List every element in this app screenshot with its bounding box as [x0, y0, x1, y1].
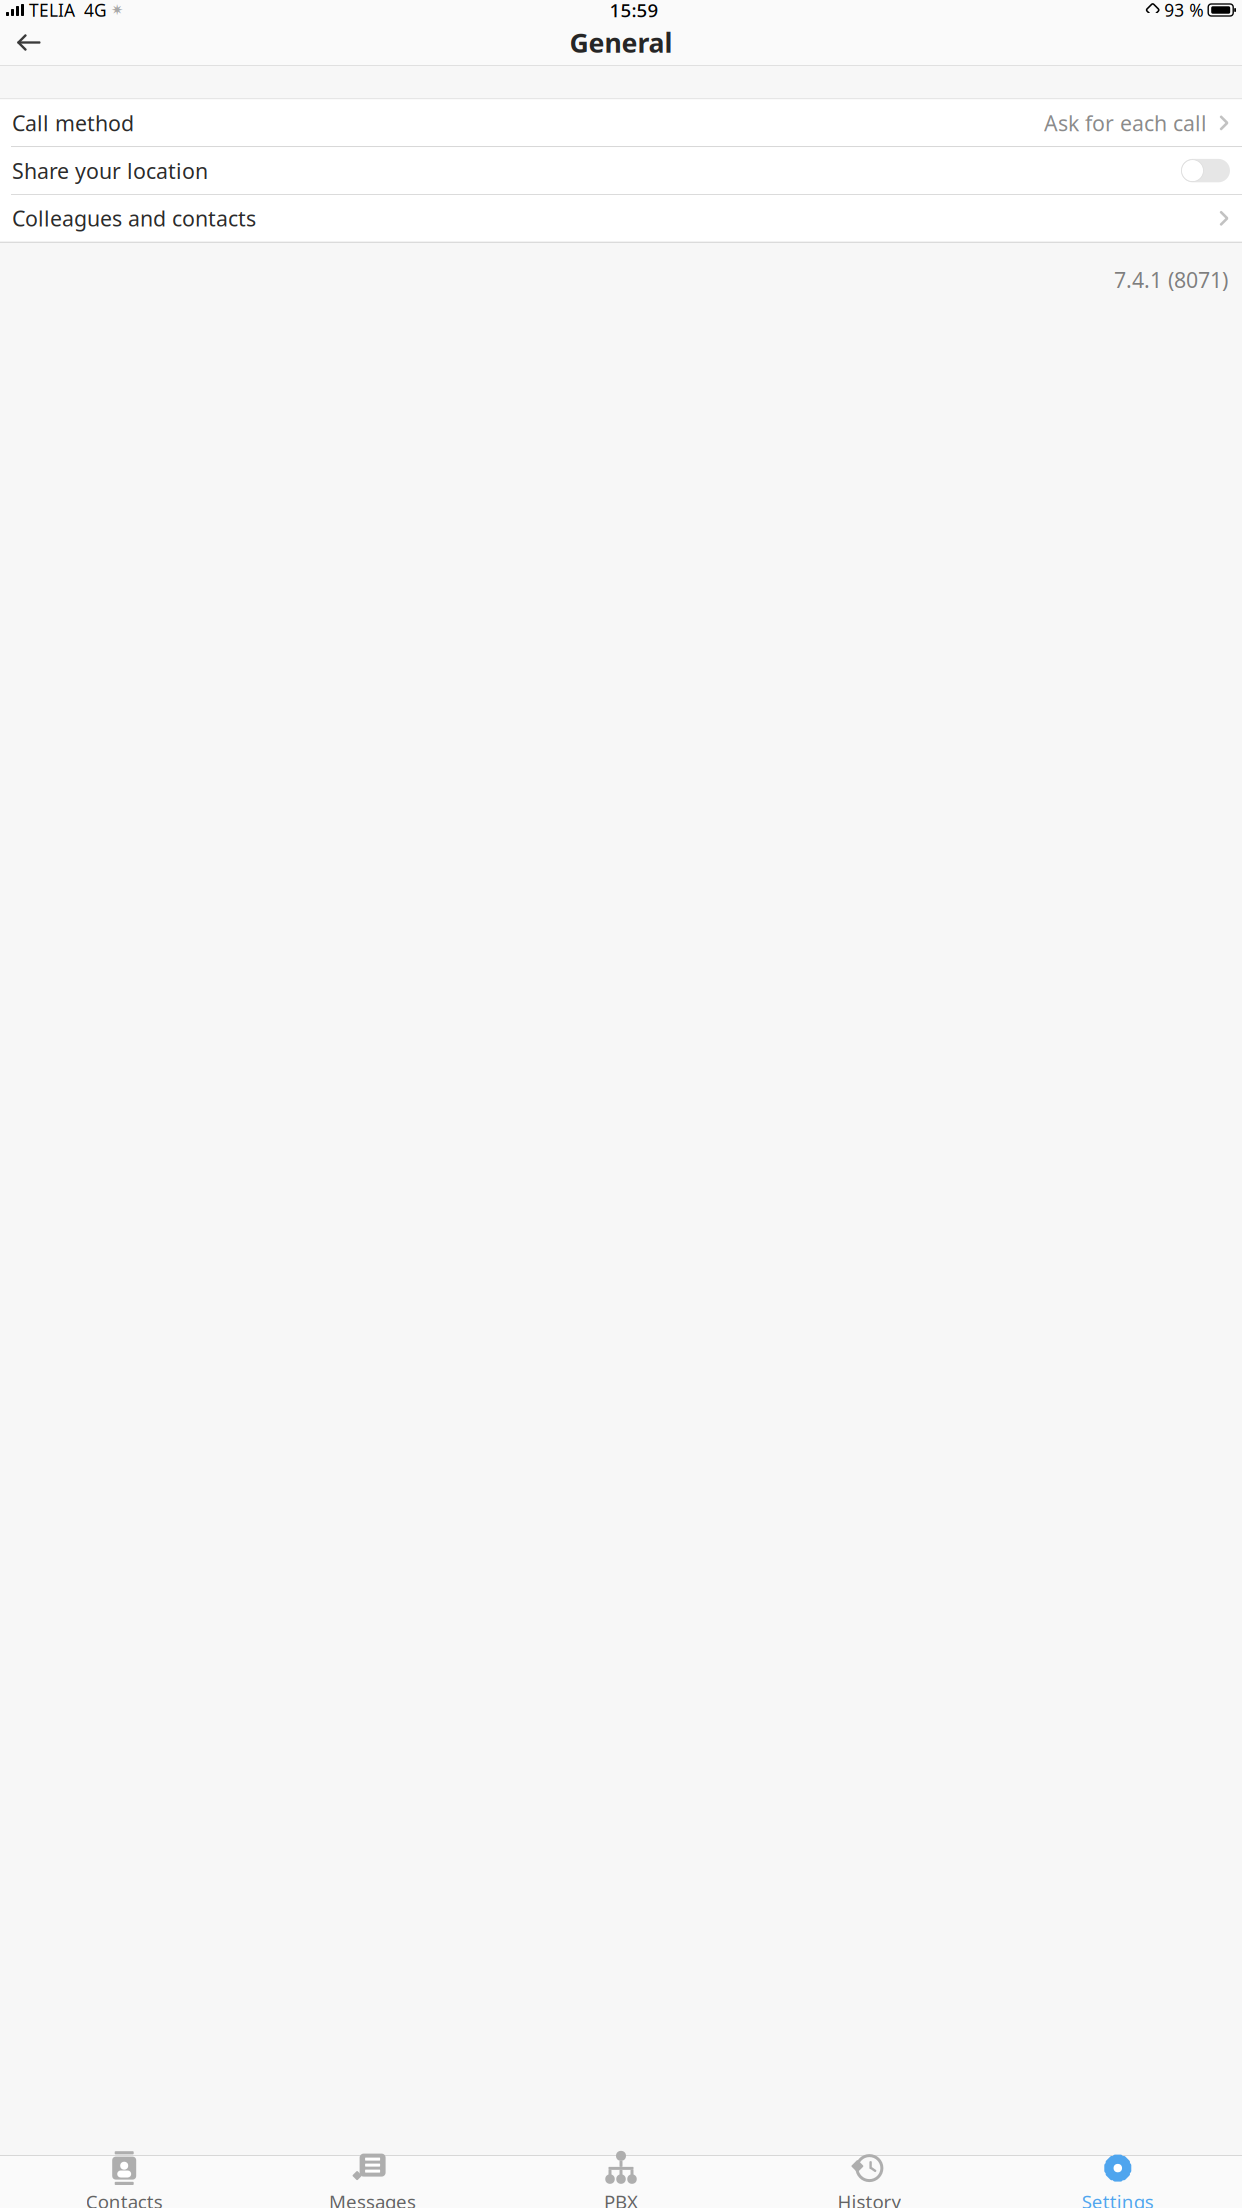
staticText: Share your location — [12, 156, 208, 185]
button[interactable]: Contacts — [0, 2156, 248, 2208]
staticText: Settings — [1082, 2189, 1154, 2208]
staticText: Colleagues and contacts — [12, 204, 256, 232]
button[interactable]: Call method — [0, 99, 1242, 146]
staticText: PBX — [604, 2189, 638, 2208]
button[interactable]: Back — [0, 20, 58, 65]
staticText: Ask for each call — [1044, 109, 1207, 137]
staticText: 93 % — [1164, 0, 1203, 21]
button[interactable]: History — [745, 2156, 994, 2208]
button[interactable]: Colleagues and contacts — [0, 195, 1242, 242]
staticText: 7.4.1 (8071) — [1114, 265, 1228, 294]
staticText: Messages — [329, 2189, 416, 2208]
button[interactable]: Messages — [248, 2156, 497, 2208]
staticText: Call method — [12, 109, 134, 137]
staticText: General — [569, 25, 672, 60]
button[interactable]: Share your location — [0, 147, 1242, 194]
staticText: ✷ — [111, 2, 123, 18]
button[interactable]: Settings — [994, 2156, 1242, 2208]
staticText: TELIA — [29, 0, 75, 21]
button[interactable]: PBX — [497, 2156, 745, 2208]
staticText: Contacts — [86, 2189, 163, 2208]
staticText: 4G — [84, 0, 107, 21]
staticText: 15:59 — [610, 0, 659, 22]
staticText: History — [837, 2189, 901, 2208]
